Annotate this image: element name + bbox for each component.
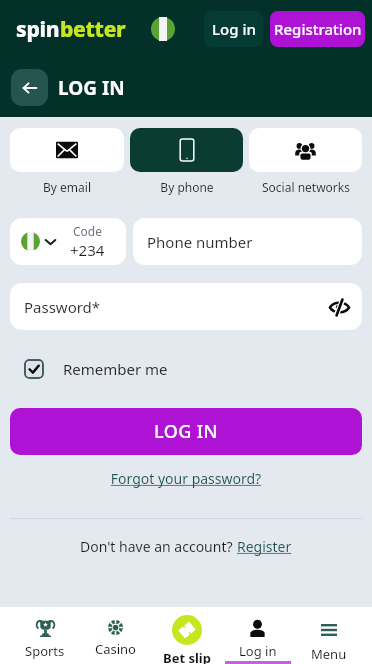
staticText: Code [73, 223, 102, 239]
button[interactable]: Forgot your password? [0, 469, 372, 488]
button[interactable]: Show password [328, 296, 350, 318]
staticText: By email [43, 179, 91, 195]
staticText: Registration [274, 19, 362, 39]
button[interactable]: Casino [80, 607, 151, 664]
button[interactable]: Password* [10, 283, 362, 330]
staticText: Menu [311, 645, 347, 663]
button[interactable]: By phone [130, 128, 243, 195]
button[interactable]: Register [237, 537, 292, 556]
button[interactable]: Code [10, 218, 126, 265]
staticText: Log in [212, 19, 256, 39]
button[interactable]: Back [11, 69, 48, 106]
staticText: +234 [70, 240, 105, 260]
button[interactable]: Log in [204, 11, 263, 47]
button[interactable]: Social networks [249, 128, 362, 195]
button[interactable]: LOG IN [10, 408, 362, 455]
button[interactable]: By email [10, 128, 124, 195]
staticText: Phone number [147, 232, 253, 252]
staticText: LOG IN [58, 75, 125, 101]
staticText: better [60, 15, 126, 44]
staticText: Sports [25, 642, 65, 660]
staticText: Password* [24, 297, 101, 317]
staticText: Log in [239, 642, 277, 660]
button[interactable]: Sports [10, 607, 80, 664]
staticText: spin [16, 15, 60, 44]
staticText: Remember me [63, 359, 168, 379]
staticText: Casino [95, 640, 136, 658]
button[interactable]: Phone number [133, 218, 362, 265]
staticText: Don't have an account? [80, 537, 237, 556]
button[interactable]: Remember me [10, 359, 362, 379]
button[interactable]: Registration [270, 11, 365, 47]
button[interactable]: Log in [222, 607, 293, 664]
button[interactable]: Menu [293, 607, 364, 664]
staticText: LOG IN [154, 419, 218, 444]
staticText: Bet slip [163, 649, 211, 664]
staticText: Social networks [262, 179, 350, 195]
button[interactable]: Bet slip [151, 607, 222, 664]
staticText: By phone [160, 179, 214, 195]
